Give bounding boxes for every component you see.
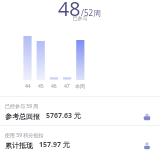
other: Total return detail (143, 113, 151, 121)
staticText: 47 (64, 83, 70, 90)
staticText: 5767.63 元 (46, 111, 81, 121)
staticText: 48 (58, 0, 81, 22)
staticText: 本周 (75, 83, 85, 89)
staticText: 已经参与 59 周 (5, 103, 39, 110)
staticText: 46 (51, 83, 57, 90)
staticText: /52周 (81, 7, 102, 18)
staticText: 使用 59 积分抵扣 (5, 132, 44, 139)
staticText: 157.97 元 (39, 140, 70, 150)
staticText: 45 (38, 83, 44, 90)
button[interactable]: 已经参与 59 周 (0, 96, 160, 125)
staticText: 参考总回报 (5, 112, 40, 121)
staticText: 已参与 (0, 15, 160, 21)
staticText: 累计抵现 (5, 141, 33, 150)
staticText: 44 (25, 83, 31, 90)
other: Savings detail (143, 142, 151, 150)
button[interactable]: 使用 59 积分抵扣 (0, 125, 160, 154)
